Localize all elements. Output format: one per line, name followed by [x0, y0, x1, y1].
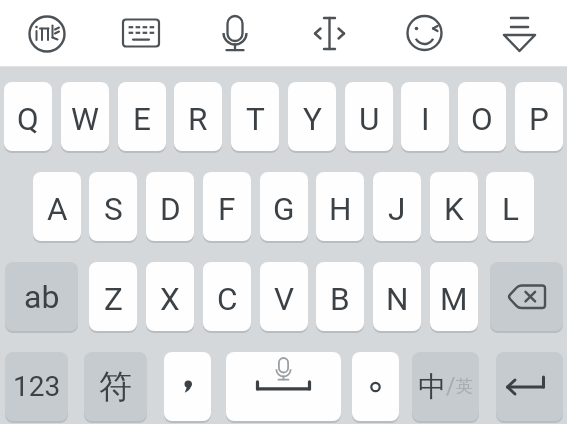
button[interactable]: 123 — [5, 352, 68, 421]
staticText: T — [246, 101, 265, 138]
staticText: Y — [303, 101, 322, 138]
button[interactable]: M — [430, 262, 478, 331]
button[interactable] — [0, 0, 94, 67]
staticText: Q — [17, 101, 39, 138]
button[interactable] — [164, 352, 211, 421]
button[interactable]: I — [401, 82, 449, 151]
button[interactable]: 符 — [84, 352, 147, 421]
button[interactable]: Q — [4, 82, 52, 151]
staticText: I — [421, 101, 430, 138]
staticText: A — [47, 191, 68, 228]
button[interactable]: V — [260, 262, 308, 331]
staticText: D — [160, 191, 181, 228]
staticText: F — [218, 191, 236, 228]
staticText: / — [446, 373, 456, 400]
button[interactable]: F — [203, 172, 251, 241]
staticText: 符 — [99, 366, 132, 408]
button[interactable]: A — [33, 172, 81, 241]
staticText: 123 — [13, 370, 61, 403]
button[interactable] — [377, 0, 472, 67]
button[interactable]: N — [373, 262, 421, 331]
button[interactable]: B — [316, 262, 364, 331]
staticText: G — [273, 191, 295, 228]
button[interactable] — [226, 352, 341, 421]
staticText: Z — [104, 281, 123, 318]
button[interactable]: O — [458, 82, 506, 151]
button[interactable]: W — [61, 82, 109, 151]
button[interactable] — [94, 0, 188, 67]
button[interactable]: G — [260, 172, 308, 241]
staticText: L — [502, 191, 519, 228]
staticText: W — [71, 101, 99, 138]
button[interactable]: U — [345, 82, 393, 151]
button[interactable]: S — [89, 172, 137, 241]
staticText: H — [329, 191, 352, 228]
staticText: V — [274, 281, 295, 318]
staticText: E — [133, 101, 151, 138]
staticText: X — [160, 281, 180, 318]
staticText: C — [217, 281, 238, 318]
staticText: U — [359, 101, 380, 138]
button[interactable]: D — [146, 172, 194, 241]
button[interactable] — [282, 0, 377, 67]
button[interactable]: T — [231, 82, 279, 151]
staticText: S — [104, 191, 123, 228]
button[interactable]: ab — [5, 262, 78, 331]
staticText: P — [529, 101, 549, 138]
staticText: ab — [24, 278, 60, 316]
button[interactable]: K — [430, 172, 478, 241]
staticText: 中 — [418, 369, 446, 404]
staticText: M — [440, 281, 468, 318]
button[interactable] — [496, 352, 563, 421]
staticText: B — [330, 281, 350, 318]
button[interactable]: R — [174, 82, 222, 151]
button[interactable]: H — [316, 172, 364, 241]
staticText: J — [388, 191, 406, 228]
staticText: N — [386, 281, 409, 318]
button[interactable]: C — [203, 262, 251, 331]
button[interactable]: 中 — [412, 352, 479, 421]
button[interactable]: P — [515, 82, 563, 151]
button[interactable]: J — [373, 172, 421, 241]
staticText: 英 — [456, 376, 473, 397]
button[interactable]: X — [146, 262, 194, 331]
staticText: O — [471, 101, 493, 138]
staticText: R — [188, 101, 208, 138]
button[interactable]: L — [486, 172, 534, 241]
staticText: K — [444, 191, 464, 228]
button[interactable]: Y — [288, 82, 336, 151]
button[interactable] — [472, 0, 567, 67]
button[interactable] — [188, 0, 282, 67]
button[interactable]: E — [118, 82, 166, 151]
button[interactable] — [490, 262, 563, 331]
button[interactable]: Z — [89, 262, 137, 331]
button[interactable] — [352, 352, 399, 421]
